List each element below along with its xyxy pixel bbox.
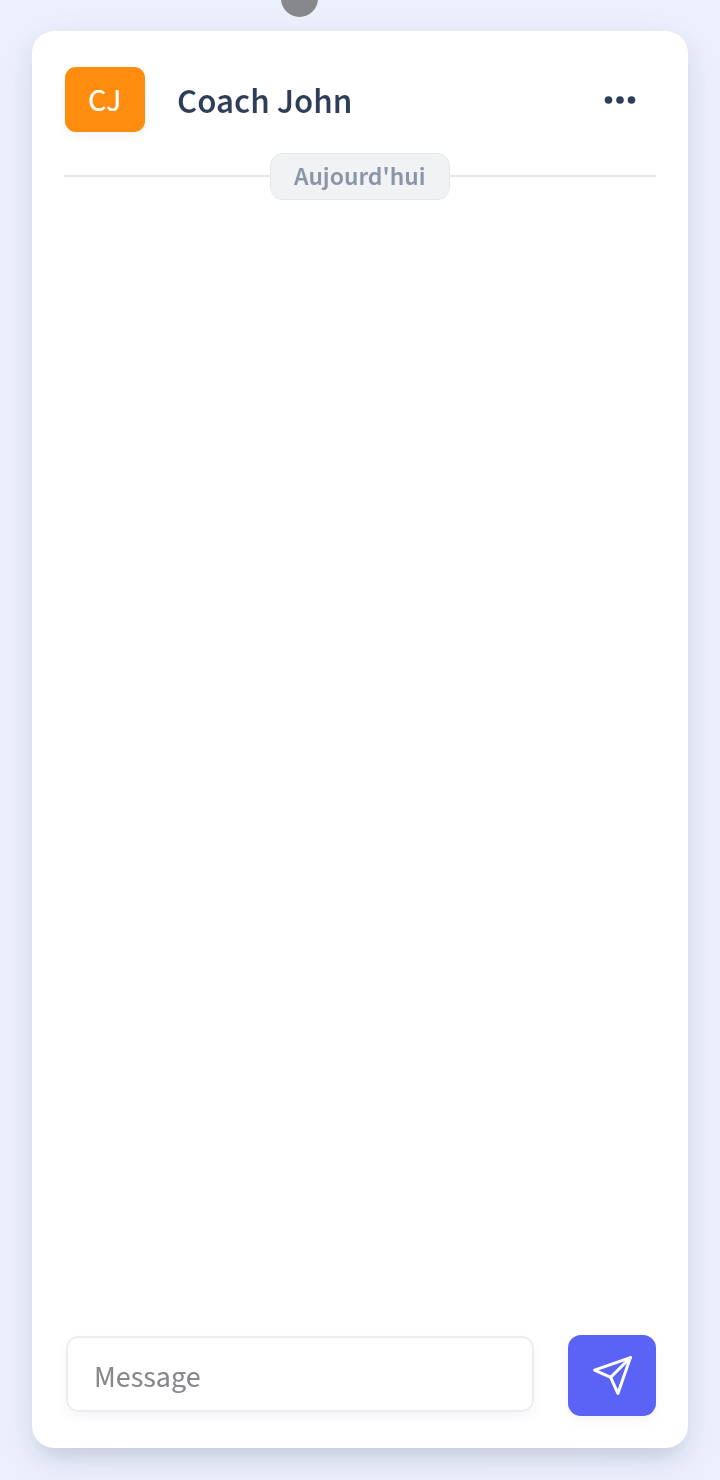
button[interactable]: Contact avatar (65, 67, 145, 132)
button[interactable]: Send message (568, 1335, 656, 1416)
staticText: CJ (88, 78, 122, 124)
button[interactable]: More options (590, 70, 650, 130)
staticText: Aujourd'hui (294, 158, 426, 195)
button[interactable]: Message (66, 1336, 534, 1412)
staticText: Message (94, 1356, 201, 1399)
staticText: Coach John (177, 77, 353, 127)
button[interactable]: Aujourd'hui (270, 153, 450, 200)
